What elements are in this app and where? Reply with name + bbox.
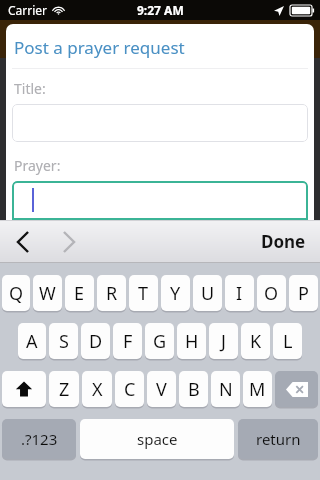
staticText: W (39, 281, 56, 306)
staticText: Q (9, 281, 24, 306)
button[interactable]: space (80, 419, 234, 459)
staticText: C (124, 377, 136, 402)
button[interactable]: A (18, 323, 46, 359)
staticText: Post a prayer request (14, 36, 185, 59)
staticText: X (92, 377, 103, 402)
staticText: S (59, 329, 69, 354)
button[interactable]: E (65, 275, 94, 311)
button[interactable]: C (115, 371, 144, 407)
staticText: Carrier (8, 2, 48, 18)
button[interactable]: Z (49, 371, 79, 407)
staticText: Z (59, 377, 70, 402)
staticText: D (89, 329, 103, 354)
button[interactable]: H (177, 323, 206, 359)
button[interactable] (12, 104, 308, 142)
staticText: H (185, 329, 199, 354)
button[interactable]: Post a prayer request (14, 36, 314, 59)
staticText: O (264, 281, 279, 306)
button[interactable]: X (82, 371, 112, 407)
button[interactable]: K (241, 323, 270, 359)
button[interactable]: S (49, 323, 78, 359)
staticText: K (250, 329, 262, 354)
button[interactable]: Next field (46, 220, 92, 263)
button[interactable]: Done (261, 220, 306, 263)
staticText: 9:27 AM (137, 2, 184, 18)
button[interactable]: D (81, 323, 110, 359)
button[interactable] (12, 181, 308, 220)
staticText: Done (261, 230, 306, 253)
button[interactable]: L (273, 323, 302, 359)
button[interactable]: P (289, 275, 318, 311)
staticText: V (156, 377, 167, 402)
button[interactable]: B (179, 371, 208, 407)
button[interactable]: Backspace (275, 371, 318, 407)
button[interactable]: Previous field (0, 220, 46, 263)
staticText: R (106, 281, 118, 306)
staticText: B (188, 377, 200, 402)
staticText: T (138, 281, 149, 306)
staticText: F (123, 329, 133, 354)
staticText: E (74, 281, 85, 306)
staticText: L (283, 329, 293, 354)
staticText: Prayer: (14, 156, 61, 175)
button[interactable]: V (147, 371, 176, 407)
staticText: A (26, 329, 38, 354)
staticText: G (153, 329, 167, 354)
button[interactable]: F (113, 323, 142, 359)
button[interactable]: I (225, 275, 254, 311)
button[interactable]: T (129, 275, 158, 311)
button[interactable]: O (257, 275, 286, 311)
staticText: U (201, 281, 215, 306)
staticText: space (137, 429, 178, 449)
button[interactable]: R (97, 275, 126, 311)
staticText: N (219, 377, 233, 402)
button[interactable]: U (193, 275, 222, 311)
button[interactable]: G (145, 323, 174, 359)
button[interactable]: Shift (2, 371, 46, 407)
button[interactable]: .?123 (2, 419, 76, 459)
staticText: I (236, 281, 243, 306)
button[interactable]: W (33, 275, 62, 311)
button[interactable]: N (211, 371, 240, 407)
staticText: J (221, 329, 226, 354)
button[interactable]: return (238, 419, 318, 459)
button[interactable]: Q (2, 275, 30, 311)
staticText: return (256, 429, 301, 449)
button[interactable]: M (243, 371, 272, 407)
staticText: Title: (14, 79, 46, 98)
staticText: P (298, 281, 309, 306)
button[interactable]: J (209, 323, 238, 359)
staticText: Y (170, 281, 181, 306)
staticText: .?123 (21, 429, 58, 449)
button[interactable]: Y (161, 275, 190, 311)
staticText: M (249, 377, 266, 402)
